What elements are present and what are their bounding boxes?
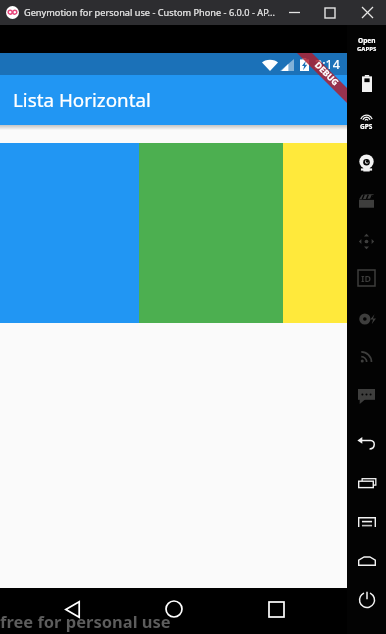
button[interactable]: Move	[347, 225, 386, 257]
button[interactable]: Recents	[347, 467, 386, 499]
button[interactable]: Menu	[347, 506, 386, 538]
staticText: free for personal use	[0, 610, 171, 632]
button[interactable]: Back	[347, 427, 386, 459]
button[interactable]: Recents	[255, 588, 297, 630]
button[interactable]: Network	[347, 340, 386, 372]
button[interactable]: Home	[347, 545, 386, 577]
staticText: GAPPS	[357, 45, 377, 53]
button[interactable]: GPS	[347, 112, 386, 132]
button[interactable]: Back	[51, 588, 93, 630]
button[interactable]: Baseband	[347, 303, 386, 335]
button[interactable]: SMS	[347, 380, 386, 412]
button[interactable]: Camera	[347, 146, 386, 178]
button[interactable]: Minimize	[276, 0, 312, 25]
button[interactable]: Maximize	[312, 0, 348, 25]
staticText: 3:14	[315, 56, 340, 73]
staticText: Lista Horizontal	[13, 87, 151, 113]
button[interactable]: Lista Horizontal	[0, 75, 347, 125]
button[interactable]: Identifiers	[347, 262, 386, 294]
staticText: Genymotion for personal use - Custom Pho…	[24, 6, 275, 19]
staticText: ID	[361, 272, 372, 284]
staticText: GPS	[360, 122, 373, 131]
button[interactable]: Close	[348, 0, 386, 25]
button[interactable]: Power	[347, 584, 386, 616]
button[interactable]: Battery	[347, 67, 386, 99]
button[interactable]: Video	[347, 185, 386, 217]
staticText: DEBUG	[312, 59, 342, 89]
button[interactable]: Home	[153, 588, 195, 630]
staticText: Open	[358, 36, 376, 45]
